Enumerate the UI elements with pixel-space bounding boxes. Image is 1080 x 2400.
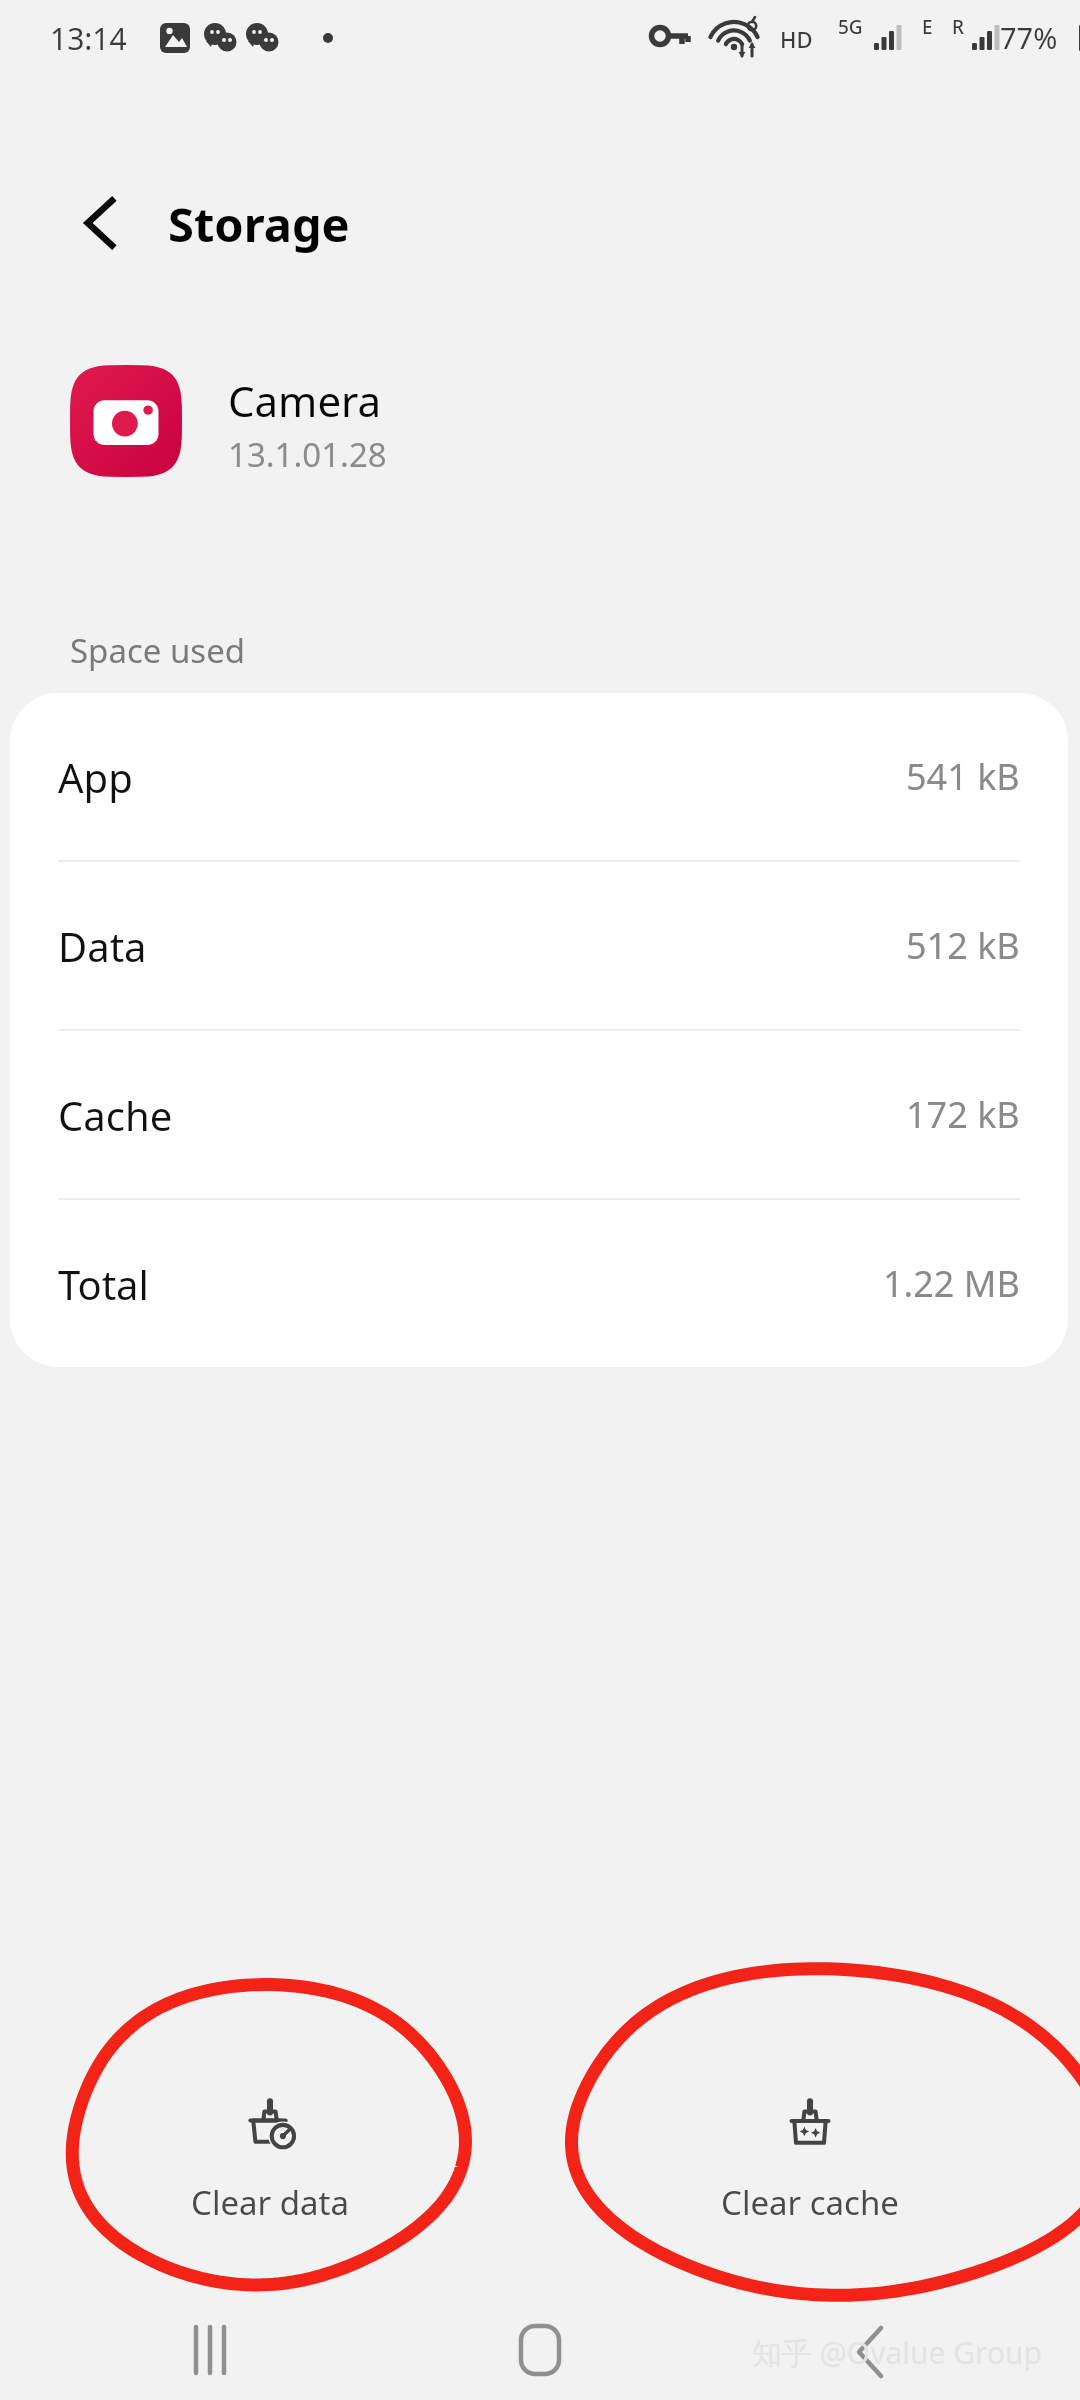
button[interactable]: Data <box>10 862 1068 1029</box>
button[interactable]: Back <box>58 178 148 268</box>
staticText: 5G <box>838 14 863 40</box>
staticText: 知乎 @Ovalue Group <box>752 2332 1043 2373</box>
staticText: Clear data <box>191 2180 349 2225</box>
staticText: E <box>922 14 933 40</box>
staticText: 1.22 MB <box>883 1259 1020 1308</box>
button[interactable]: App <box>10 693 1068 860</box>
staticText: Clear cache <box>721 2180 899 2225</box>
staticText: App <box>58 750 133 804</box>
staticText: 13.1.01.28 <box>228 432 387 477</box>
staticText: Space used <box>70 628 246 673</box>
staticText: 77% <box>1000 18 1058 57</box>
button[interactable]: Clear data <box>0 2070 540 2225</box>
button[interactable]: Clear cache <box>540 2070 1080 2225</box>
button[interactable]: Total <box>10 1200 1068 1367</box>
staticText: Camera <box>228 372 382 429</box>
staticText: Cache <box>58 1088 173 1142</box>
staticText: 13:14 <box>50 18 127 59</box>
button[interactable]: Cache <box>10 1031 1068 1198</box>
staticText: 541 kB <box>906 752 1020 801</box>
staticText: Total <box>58 1257 149 1311</box>
button[interactable]: Back <box>780 2300 960 2400</box>
staticText: R <box>952 14 965 40</box>
staticText: HD <box>780 24 813 54</box>
staticText: 512 kB <box>906 921 1020 970</box>
staticText: Storage <box>168 192 350 256</box>
button[interactable]: Home <box>450 2300 630 2400</box>
staticText: 172 kB <box>906 1090 1020 1139</box>
staticText: Data <box>58 919 147 973</box>
button[interactable]: Recent apps <box>120 2300 300 2400</box>
